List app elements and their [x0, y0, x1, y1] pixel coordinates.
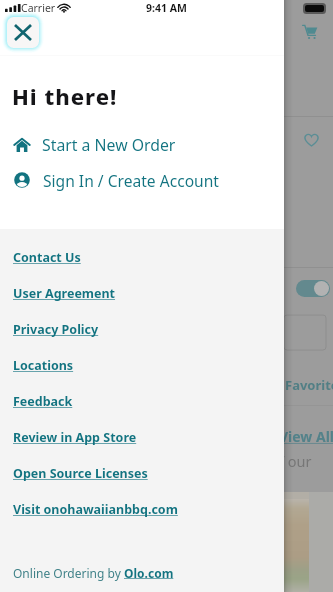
staticText: Hi there!	[12, 81, 118, 111]
staticText: Visit onohawaiianbbq.com	[13, 501, 178, 518]
staticText: Feedback	[13, 393, 73, 410]
button[interactable]: Open Source Licenses	[0, 459, 284, 487]
button[interactable]: Feedback	[0, 387, 284, 415]
button[interactable]: User Agreement	[0, 279, 284, 307]
staticText: User Agreement	[13, 285, 116, 302]
staticText: Open Source Licenses	[13, 465, 148, 482]
staticText: Locations	[13, 357, 74, 374]
button[interactable]: Sign In / Create Account	[0, 166, 284, 194]
staticText: Review in App Store	[13, 429, 137, 446]
staticText: View All	[279, 427, 333, 446]
staticText: f our	[279, 451, 312, 471]
staticText: Contact Us	[13, 249, 81, 266]
button[interactable]: Contact Us	[0, 243, 284, 271]
staticText: Favorites	[285, 376, 333, 394]
staticText: Start a New Order	[42, 134, 176, 156]
staticText: Sign In / Create Account	[43, 170, 219, 191]
button[interactable]: Locations	[0, 351, 284, 379]
staticText: 9:41 AM	[146, 1, 187, 15]
button[interactable]: Close	[7, 17, 39, 48]
button[interactable]: Visit onohawaiianbbq.com	[0, 495, 284, 523]
staticText: Carrier	[21, 1, 56, 15]
staticText: Privacy Policy	[13, 321, 99, 338]
button[interactable]: Olo.com	[124, 565, 174, 581]
staticText: Online Ordering by	[13, 565, 124, 581]
button[interactable]: Start a New Order	[0, 131, 284, 159]
button[interactable]: Privacy Policy	[0, 315, 284, 343]
button[interactable]: Review in App Store	[0, 423, 284, 451]
